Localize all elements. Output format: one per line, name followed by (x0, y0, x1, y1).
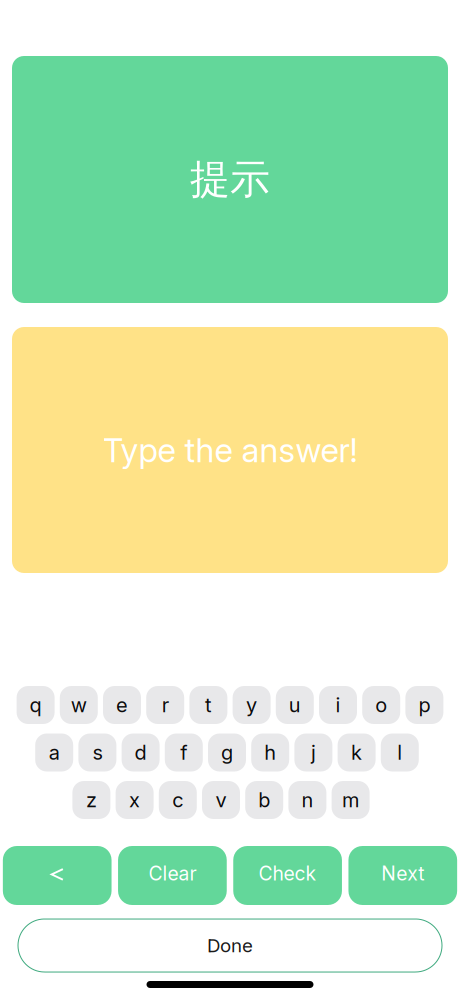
staticText: m (342, 788, 359, 812)
staticText: i (335, 693, 340, 717)
button[interactable]: l (381, 733, 419, 771)
button[interactable]: n (288, 781, 326, 819)
staticText: x (129, 788, 140, 812)
staticText: Next (381, 862, 424, 885)
button[interactable]: b (245, 781, 283, 819)
button[interactable]: Check (233, 846, 342, 905)
button[interactable]: q (17, 686, 55, 724)
button[interactable]: m (332, 781, 370, 819)
staticText: n (301, 788, 313, 812)
staticText: b (258, 788, 270, 812)
button[interactable]: Type the answer! (12, 327, 448, 573)
button[interactable]: e (103, 686, 141, 724)
staticText: q (30, 693, 42, 717)
staticText: l (397, 740, 402, 765)
button[interactable]: p (405, 686, 443, 724)
staticText: f (180, 740, 187, 765)
button[interactable]: Back (3, 846, 111, 905)
button[interactable]: u (276, 686, 314, 724)
button[interactable]: y (233, 686, 271, 724)
staticText: p (418, 693, 430, 717)
staticText: w (71, 693, 87, 717)
staticText: 提示 (190, 154, 270, 205)
button[interactable]: Next (348, 846, 457, 905)
button[interactable]: Done (18, 919, 442, 972)
button[interactable]: i (319, 686, 357, 724)
button[interactable]: z (72, 781, 110, 819)
button[interactable]: s (78, 733, 116, 771)
button[interactable]: c (159, 781, 197, 819)
staticText: e (116, 693, 128, 717)
staticText: c (172, 788, 183, 812)
button[interactable]: g (208, 733, 246, 771)
button[interactable]: w (60, 686, 98, 724)
staticText: d (135, 740, 147, 765)
button[interactable]: d (122, 733, 160, 771)
button[interactable]: Clear (118, 846, 227, 905)
staticText: y (246, 693, 257, 717)
button[interactable]: f (165, 733, 203, 771)
staticText: v (215, 788, 226, 812)
staticText: g (221, 740, 233, 765)
button[interactable]: j (294, 733, 332, 771)
staticText: Clear (148, 862, 196, 885)
staticText: z (86, 788, 97, 812)
staticText: Type the answer! (102, 430, 357, 470)
staticText: h (264, 740, 276, 765)
button[interactable]: a (35, 733, 73, 771)
button[interactable]: k (338, 733, 376, 771)
staticText: u (289, 693, 301, 717)
staticText: o (375, 693, 387, 717)
button[interactable]: t (189, 686, 227, 724)
button[interactable]: o (362, 686, 400, 724)
staticText: Done (207, 934, 253, 957)
staticText: r (162, 693, 169, 717)
staticText: t (205, 693, 212, 717)
staticText: a (49, 740, 60, 765)
button[interactable]: v (202, 781, 240, 819)
button[interactable]: r (146, 686, 184, 724)
staticText: Check (259, 862, 317, 885)
button[interactable]: x (116, 781, 154, 819)
staticText: j (311, 740, 316, 765)
staticText: s (92, 740, 102, 765)
button[interactable]: h (251, 733, 289, 771)
staticText: k (351, 740, 362, 765)
